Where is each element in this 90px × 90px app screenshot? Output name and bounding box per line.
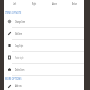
- button[interactable]: Below: [64, 0, 84, 8]
- staticText: Right: [32, 2, 36, 6]
- staticText: Paste style: [15, 56, 23, 60]
- staticText: Above: [52, 2, 57, 6]
- staticText: MORE OPTIONS: [5, 77, 21, 81]
- button[interactable]: Above: [44, 0, 64, 8]
- button[interactable]: Edit Item: [4, 28, 84, 39]
- staticText: Edit Item: [15, 32, 22, 36]
- button[interactable]: Left: [4, 0, 24, 8]
- button[interactable]: Right: [24, 0, 44, 8]
- staticText: Below: [72, 2, 77, 6]
- staticText: Add row: [15, 84, 22, 88]
- staticText: ITEMS OF NOTE: [5, 11, 21, 15]
- button[interactable]: Paste style: [4, 52, 84, 63]
- button[interactable]: Copy Style: [4, 40, 84, 51]
- button[interactable]: Change Item: [4, 16, 84, 27]
- staticText: Copy Style: [15, 44, 23, 48]
- staticText: Delete Item: [15, 68, 24, 72]
- button[interactable]: Add row: [4, 82, 84, 90]
- button[interactable]: Delete Item: [4, 64, 84, 75]
- staticText: Change Item: [15, 20, 25, 24]
- staticText: Left: [13, 2, 16, 6]
